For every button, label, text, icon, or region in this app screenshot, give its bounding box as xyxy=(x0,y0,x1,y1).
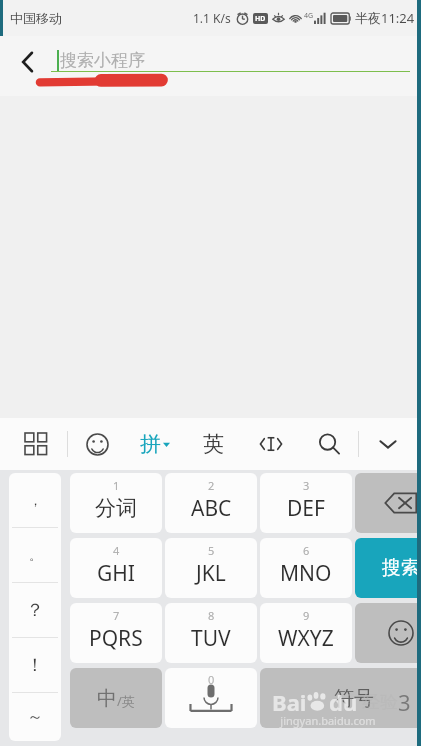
button[interactable]: ？ xyxy=(9,583,61,637)
staticText: TUV xyxy=(191,624,231,653)
button[interactable]: 英 xyxy=(184,418,242,470)
staticText: JKL xyxy=(196,559,226,588)
staticText: 英 xyxy=(203,431,224,457)
staticText: 7 xyxy=(113,608,120,623)
button[interactable]: 拼 xyxy=(126,418,184,470)
staticText: ～ xyxy=(27,707,43,727)
button[interactable]: Space xyxy=(165,668,257,728)
staticText: ABC xyxy=(191,494,232,523)
staticText: Bai xyxy=(272,687,307,717)
button[interactable]: 2 xyxy=(165,473,257,533)
button[interactable]: 3 xyxy=(260,473,352,533)
button[interactable]: 搜索 xyxy=(355,538,421,598)
staticText: 4G xyxy=(304,11,314,21)
staticText: 1 xyxy=(113,478,120,493)
button[interactable]: Keyboard layouts xyxy=(4,418,67,470)
staticText: jingyan.baidu.com xyxy=(280,713,376,728)
staticText: ！ xyxy=(26,654,44,677)
staticText: 。 xyxy=(29,547,42,563)
staticText: 3 xyxy=(398,687,411,717)
staticText: 3 xyxy=(303,478,310,493)
button[interactable]: 8 xyxy=(165,603,257,663)
staticText: DEF xyxy=(287,494,325,523)
staticText: 经验 xyxy=(362,691,398,714)
staticText: 9 xyxy=(303,608,310,623)
staticText: 中 xyxy=(97,686,117,711)
button[interactable]: 1 xyxy=(70,473,162,533)
button[interactable]: 6 xyxy=(260,538,352,598)
button[interactable]: Back xyxy=(6,40,50,84)
staticText: 搜索小程序 xyxy=(60,50,145,71)
button[interactable]: Move cursor xyxy=(242,418,300,470)
button[interactable]: 中 xyxy=(70,668,162,728)
button[interactable]: Backspace xyxy=(355,473,421,533)
button[interactable]: 符号 xyxy=(260,668,421,728)
button[interactable]: ～ xyxy=(9,693,61,741)
button[interactable]: 4 xyxy=(70,538,162,598)
button[interactable]: 搜索小程序 xyxy=(55,42,410,76)
staticText: du xyxy=(329,687,358,717)
button[interactable]: Search xyxy=(300,418,358,470)
staticText: 0 xyxy=(208,672,215,687)
staticText: 5 xyxy=(208,543,215,558)
staticText: HD xyxy=(255,14,266,24)
staticText: 中国移动 xyxy=(10,10,62,26)
staticText: GHI xyxy=(97,559,135,588)
staticText: 1.1 K/s xyxy=(193,10,231,26)
button[interactable]: Hide keyboard xyxy=(359,418,417,470)
staticText: 4 xyxy=(113,543,120,558)
staticText: MNO xyxy=(280,559,332,588)
button[interactable]: 5 xyxy=(165,538,257,598)
staticText: ？ xyxy=(26,599,44,622)
button[interactable]: Emoji xyxy=(68,418,126,470)
staticText: 2 xyxy=(208,478,215,493)
staticText: 8 xyxy=(208,608,215,623)
staticText: 6 xyxy=(303,543,310,558)
staticText: WXYZ xyxy=(278,624,334,653)
staticText: 半夜11:24 xyxy=(355,9,415,27)
staticText: 分词 xyxy=(95,495,137,521)
button[interactable]: ！ xyxy=(9,638,61,692)
button[interactable]: 9 xyxy=(260,603,352,663)
staticText: 拼 xyxy=(140,431,161,457)
staticText: 搜索 xyxy=(382,556,420,580)
button[interactable]: 。 xyxy=(9,528,61,582)
button[interactable]: 7 xyxy=(70,603,162,663)
staticText: PQRS xyxy=(89,624,143,653)
staticText: /英 xyxy=(117,692,135,710)
button[interactable]: Emoji xyxy=(355,603,421,663)
staticText: 符号 xyxy=(334,686,374,711)
button[interactable]: ， xyxy=(9,473,61,527)
staticText: ， xyxy=(29,492,42,508)
